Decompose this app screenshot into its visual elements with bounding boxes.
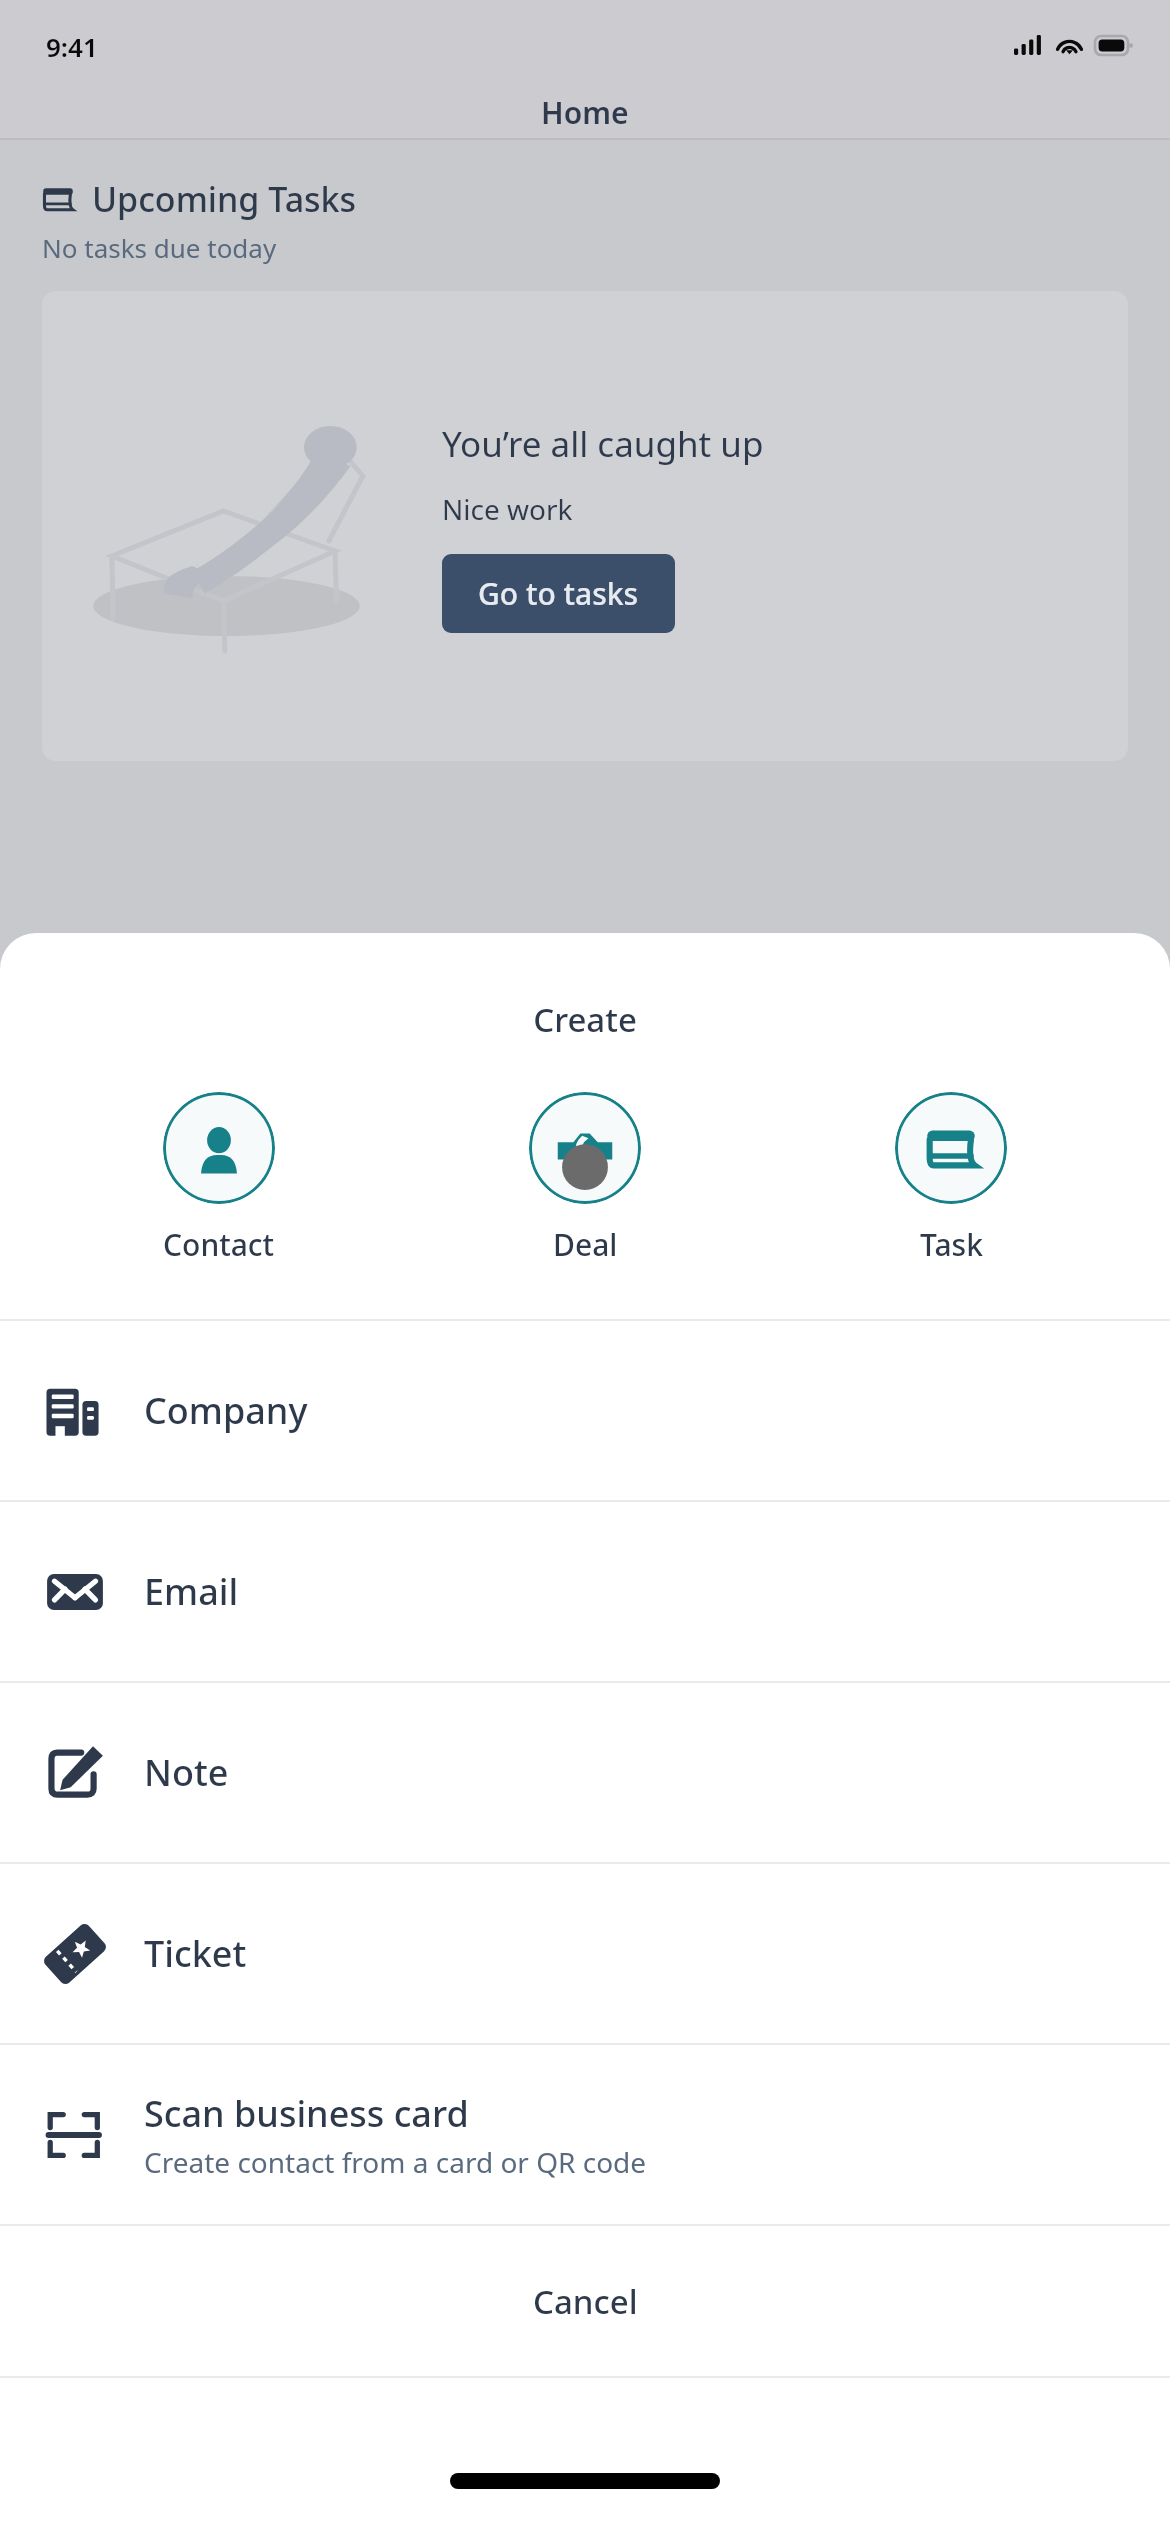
other: Email (44, 1561, 106, 1623)
staticText: Note (144, 1748, 229, 1797)
staticText: Upcoming Tasks (92, 176, 357, 222)
button[interactable]: Deal (402, 1092, 768, 1265)
staticText: 9:41 (46, 29, 98, 64)
other: Ticket (44, 1923, 106, 1985)
button[interactable]: Cancel (0, 2226, 1170, 2376)
staticText: Nice work (442, 490, 573, 528)
staticText: Contact (163, 1224, 275, 1265)
button[interactable]: Company (0, 1321, 1170, 1500)
other: Note (44, 1742, 106, 1804)
staticText: Company (144, 1386, 308, 1435)
staticText: Go to tasks (478, 573, 639, 614)
button[interactable]: Note (0, 1683, 1170, 1862)
staticText: Create contact from a card or QR code (144, 2143, 647, 2181)
button[interactable]: Ticket (0, 1864, 1170, 2043)
staticText: Scan business card (144, 2089, 469, 2138)
staticText: No tasks due today (42, 230, 277, 265)
staticText: Cancel (533, 2279, 638, 2324)
other: Company (44, 1380, 106, 1442)
staticText: Home (541, 92, 629, 133)
staticText: Task (920, 1224, 983, 1265)
button[interactable]: Task (768, 1092, 1134, 1265)
staticText: Deal (553, 1224, 618, 1265)
button[interactable]: Scan (0, 2045, 1170, 2224)
staticText: Create (0, 997, 1170, 1042)
other: Scan (44, 2104, 106, 2166)
button[interactable]: Contact (36, 1092, 402, 1265)
staticText: Ticket (144, 1929, 247, 1978)
staticText: You’re all caught up (442, 420, 764, 468)
button[interactable]: Go to tasks (442, 554, 675, 633)
button[interactable]: Email (0, 1502, 1170, 1681)
staticText: Email (144, 1567, 239, 1616)
